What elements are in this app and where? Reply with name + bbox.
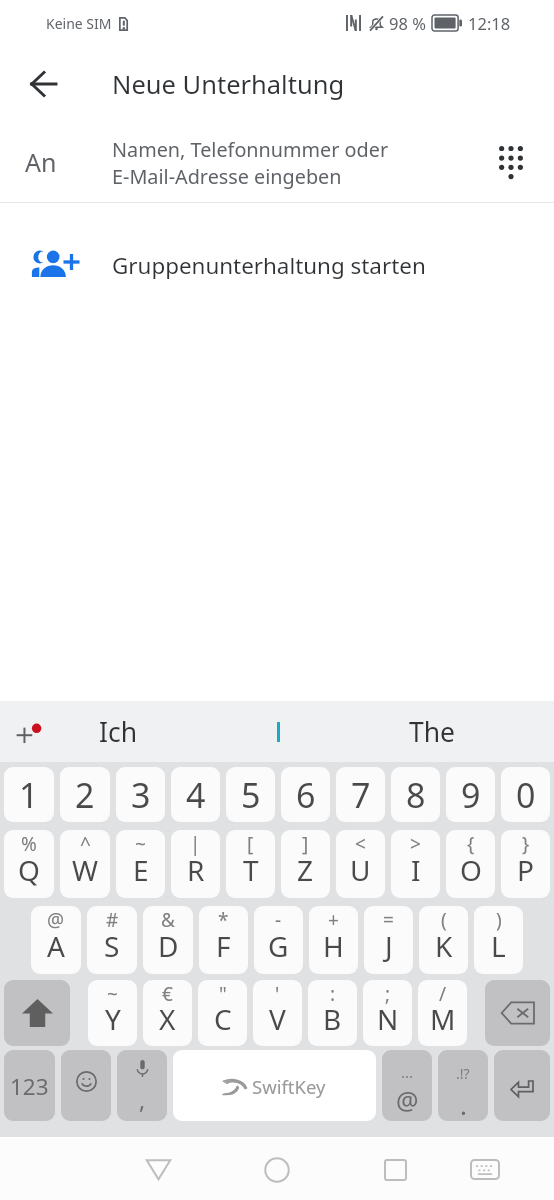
- button[interactable]: 1: [4, 767, 54, 822]
- button[interactable]: Zurück: [118, 1139, 198, 1200]
- button[interactable]: 6: [281, 767, 330, 822]
- staticText: 8: [406, 772, 426, 818]
- button[interactable]: €: [143, 980, 192, 1046]
- staticText: ^: [80, 831, 91, 857]
- button[interactable]: .!?: [438, 1050, 488, 1121]
- button[interactable]: Wähltastatur: [487, 138, 535, 186]
- staticText: [: [247, 831, 254, 857]
- staticText: The: [409, 714, 456, 750]
- staticText: SwiftKey: [252, 1074, 326, 1099]
- button[interactable]: >: [391, 830, 440, 898]
- button[interactable]: ~: [88, 980, 137, 1046]
- button[interactable]: ': [253, 980, 302, 1046]
- button[interactable]: Gruppenunterhaltung starten: [0, 225, 554, 305]
- staticText: ': [275, 981, 280, 1007]
- button[interactable]: An: [0, 122, 554, 202]
- staticText: 2: [75, 772, 95, 818]
- button[interactable]: ...: [382, 1050, 432, 1121]
- staticText: F: [216, 927, 231, 965]
- button[interactable]: @: [31, 906, 81, 974]
- staticText: K: [435, 927, 453, 965]
- staticText: 6: [296, 772, 316, 818]
- button[interactable]: 8: [391, 767, 440, 822]
- staticText: @: [396, 1083, 419, 1117]
- staticText: V: [269, 1000, 286, 1038]
- button[interactable]: ,: [117, 1050, 167, 1121]
- button[interactable]: 5: [226, 767, 275, 822]
- staticText: ): [496, 907, 502, 933]
- staticText: |: [190, 831, 201, 857]
- button[interactable]: 3: [116, 767, 165, 822]
- button[interactable]: *: [199, 906, 248, 974]
- staticText: C: [214, 1000, 232, 1038]
- staticText: A: [47, 927, 65, 965]
- button[interactable]: #: [87, 906, 137, 974]
- button[interactable]: ": [198, 980, 247, 1046]
- button[interactable]: ): [474, 906, 523, 974]
- staticText: B: [323, 1000, 342, 1038]
- button[interactable]: 123: [4, 1050, 55, 1121]
- button[interactable]: ;: [363, 980, 412, 1046]
- staticText: Gruppenunterhaltung starten: [112, 250, 426, 281]
- staticText: .!?: [456, 1064, 470, 1083]
- button[interactable]: Ich: [62, 701, 174, 762]
- button[interactable]: Emoji: [61, 1050, 111, 1121]
- staticText: *: [218, 907, 229, 933]
- button[interactable]: (: [419, 906, 468, 974]
- button[interactable]: Eingabe: [494, 1050, 550, 1121]
- button[interactable]: |: [171, 830, 220, 898]
- button[interactable]: Mehr: [6, 710, 50, 754]
- button[interactable]: 4: [171, 767, 220, 822]
- button[interactable]: ]: [281, 830, 330, 898]
- button[interactable]: Löschen: [485, 980, 550, 1046]
- staticText: D: [158, 927, 179, 965]
- staticText: R: [187, 851, 205, 889]
- staticText: ,: [139, 1084, 146, 1115]
- staticText: 98 %: [389, 12, 426, 34]
- button[interactable]: Umschalt: [4, 980, 70, 1046]
- staticText: S: [104, 927, 120, 965]
- staticText: E: [133, 851, 149, 889]
- button[interactable]: SwiftKey: [173, 1050, 376, 1121]
- button[interactable]: [: [226, 830, 275, 898]
- staticText: ]: [302, 831, 309, 857]
- staticText: <: [355, 831, 366, 857]
- staticText: J: [385, 927, 393, 965]
- button[interactable]: +: [309, 906, 358, 974]
- button[interactable]: <: [336, 830, 385, 898]
- staticText: :: [330, 981, 336, 1007]
- button[interactable]: Tastatur: [445, 1139, 525, 1200]
- staticText: Y: [105, 1000, 121, 1038]
- button[interactable]: Übersicht: [355, 1139, 435, 1200]
- staticText: >: [410, 831, 421, 857]
- staticText: Q: [18, 851, 40, 889]
- button[interactable]: [224, 701, 332, 762]
- staticText: -: [275, 907, 282, 933]
- button[interactable]: 7: [336, 767, 385, 822]
- staticText: @: [47, 907, 65, 933]
- button[interactable]: 0: [501, 767, 550, 822]
- button[interactable]: -: [254, 906, 303, 974]
- staticText: Keine SIM: [46, 14, 112, 33]
- button[interactable]: Zurück: [17, 58, 69, 110]
- button[interactable]: ^: [60, 830, 110, 898]
- button[interactable]: }: [501, 830, 550, 898]
- button[interactable]: :: [308, 980, 357, 1046]
- staticText: {: [467, 831, 475, 857]
- staticText: G: [268, 927, 289, 965]
- button[interactable]: /: [418, 980, 467, 1046]
- button[interactable]: 9: [446, 767, 495, 822]
- staticText: U: [350, 851, 371, 889]
- button[interactable]: Startbildschirm: [237, 1139, 317, 1200]
- staticText: P: [517, 851, 534, 889]
- button[interactable]: 2: [60, 767, 110, 822]
- button[interactable]: The: [378, 701, 486, 762]
- button[interactable]: =: [364, 906, 413, 974]
- button[interactable]: {: [446, 830, 495, 898]
- button[interactable]: %: [4, 830, 54, 898]
- staticText: An: [25, 145, 57, 179]
- button[interactable]: &: [143, 906, 193, 974]
- staticText: ": [219, 981, 227, 1007]
- button[interactable]: ~: [116, 830, 165, 898]
- staticText: ...: [401, 1062, 414, 1082]
